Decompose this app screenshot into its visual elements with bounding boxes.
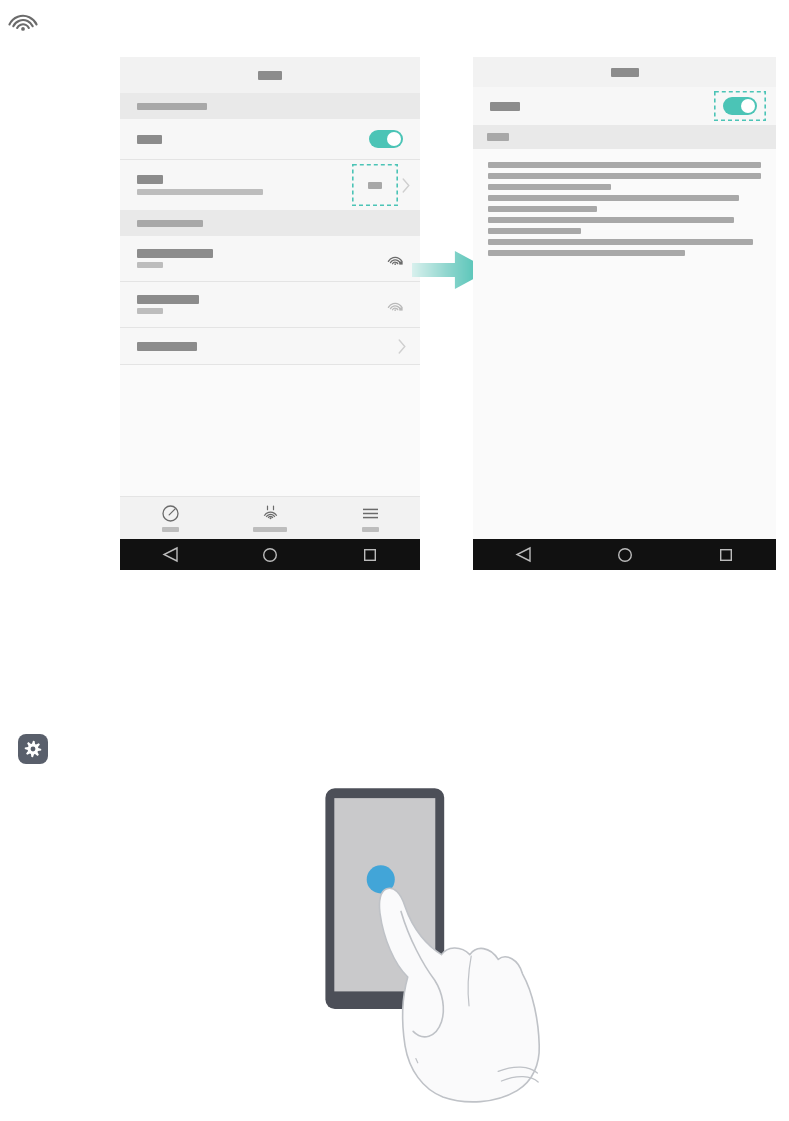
button[interactable]: Settings <box>18 734 48 764</box>
button[interactable]: Recents <box>675 539 776 570</box>
button[interactable]: Back <box>120 539 220 570</box>
button[interactable] <box>120 236 420 281</box>
button[interactable]: Toggle <box>723 97 757 115</box>
button[interactable]: Home <box>574 539 675 570</box>
button[interactable]: Scan <box>120 497 220 539</box>
button[interactable]: Recents <box>320 539 420 570</box>
button[interactable]: Toggle <box>120 119 420 159</box>
button[interactable] <box>120 328 420 364</box>
button[interactable] <box>120 282 420 327</box>
button[interactable] <box>120 160 420 210</box>
button[interactable]: More <box>320 497 420 539</box>
button[interactable]: Back <box>473 539 574 570</box>
button[interactable]: Toggle <box>473 87 776 125</box>
button[interactable]: Home <box>220 539 320 570</box>
button[interactable]: Toggle <box>369 130 403 148</box>
button[interactable]: Wi-Fi Direct <box>220 497 320 539</box>
button[interactable]: Wi-Fi <box>6 5 40 33</box>
